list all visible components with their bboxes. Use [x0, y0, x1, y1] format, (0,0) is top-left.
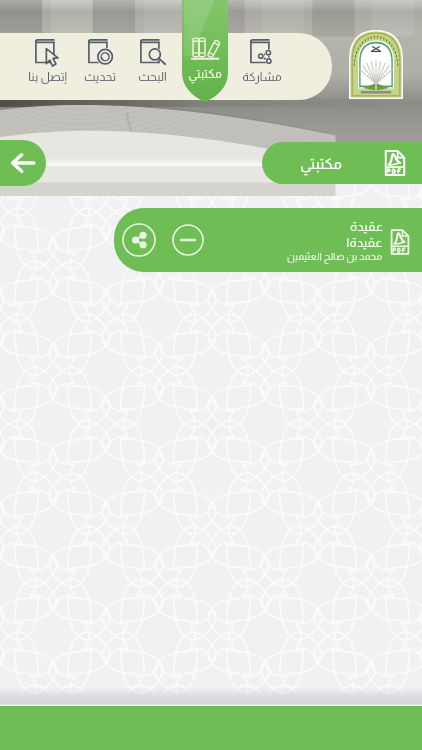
staticText: عقيدة١ [346, 235, 383, 250]
staticText: مكتبتي [300, 155, 342, 172]
staticText: مشاركة [242, 70, 282, 83]
staticText: عقيدة [350, 219, 383, 234]
staticText: مكتبتي [188, 67, 222, 80]
button[interactable]: Share [114, 208, 422, 272]
button[interactable]: مشاركة [235, 37, 289, 99]
staticText: البحث [138, 70, 167, 83]
staticText: محمد بن صالح العثيمين [287, 251, 383, 262]
button[interactable]: Back [0, 140, 46, 186]
staticText: تحديث [84, 70, 116, 83]
button[interactable]: Share [122, 223, 156, 257]
button[interactable]: البحث [125, 37, 179, 99]
staticText: إتصل بنا [28, 70, 67, 83]
button[interactable]: إتصل بنا [20, 37, 74, 99]
button[interactable]: مكتبتي [178, 33, 232, 95]
button[interactable]: Remove [172, 224, 204, 256]
button[interactable]: تحديث [73, 37, 127, 99]
button[interactable]: مكتبتي [262, 142, 422, 184]
